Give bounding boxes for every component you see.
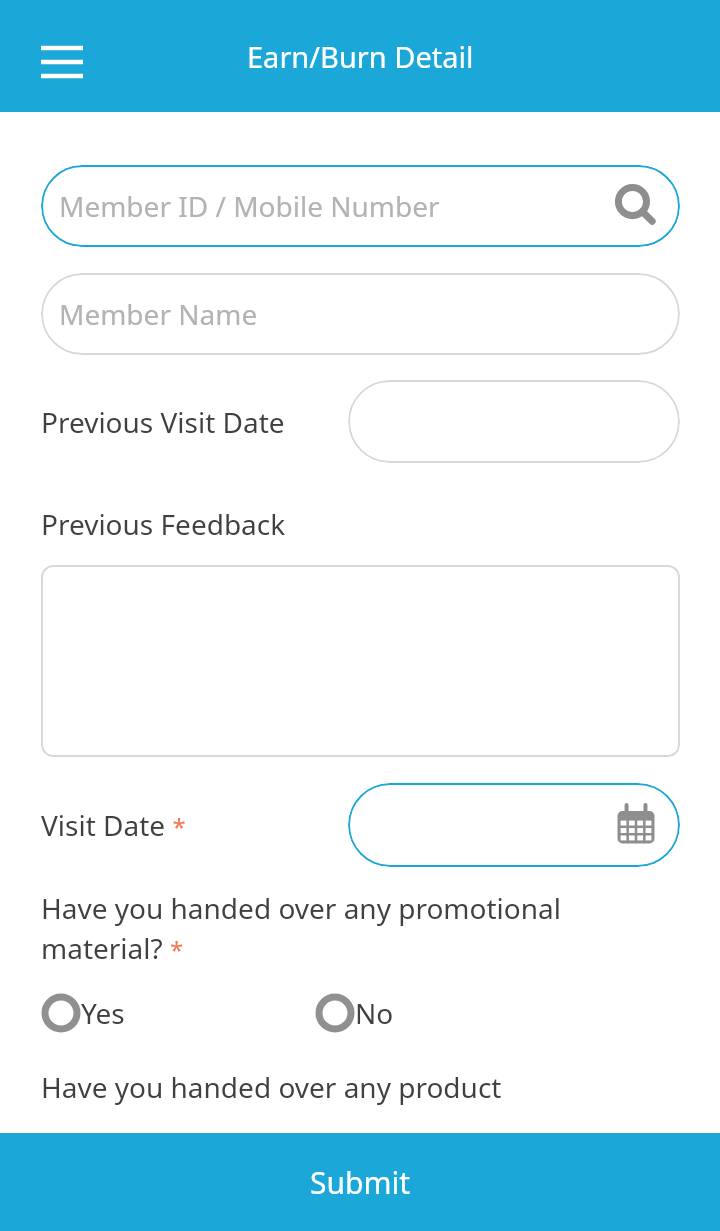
staticText: Previous Feedback [41, 505, 286, 543]
button[interactable]: Submit [0, 1133, 720, 1231]
staticText: Have you handed over any product [41, 1068, 502, 1106]
staticText: Earn/Burn Detail [247, 37, 474, 76]
staticText: No [355, 994, 394, 1032]
button[interactable]: Open navigation menu [34, 34, 90, 90]
button[interactable]: Member Name [41, 273, 680, 355]
other: Pick date [614, 803, 658, 847]
staticText: Member ID / Mobile Number [59, 187, 440, 225]
other: Search [614, 184, 658, 228]
button[interactable]: Pick date [348, 783, 680, 867]
button[interactable]: Member ID / Mobile Number [41, 165, 680, 247]
button[interactable] [348, 380, 680, 463]
staticText: Yes [81, 994, 125, 1032]
button[interactable]: No [315, 993, 394, 1033]
staticText: Submit [310, 1162, 411, 1203]
staticText: Have you handed over any promotional mat… [41, 889, 660, 968]
button[interactable] [41, 565, 680, 757]
staticText: Previous Visit Date [41, 403, 285, 441]
staticText: Member Name [59, 295, 258, 333]
button[interactable]: Yes [41, 993, 125, 1033]
staticText: Visit Date * [41, 806, 186, 844]
